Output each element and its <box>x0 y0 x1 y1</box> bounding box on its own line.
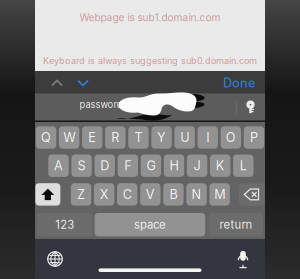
button[interactable]: Y <box>151 126 172 149</box>
staticText: return <box>219 218 252 231</box>
button[interactable]: S <box>71 154 92 177</box>
staticText: D <box>100 158 109 173</box>
staticText: Y <box>157 130 166 145</box>
staticText: U <box>180 130 189 145</box>
staticText: B <box>169 187 177 202</box>
staticText: V <box>146 187 155 202</box>
button[interactable]: Dictation <box>230 246 256 272</box>
button[interactable]: return <box>209 213 263 236</box>
button[interactable]: M <box>209 183 230 206</box>
button[interactable]: C <box>117 183 137 206</box>
staticText: Z <box>77 187 85 202</box>
button[interactable]: X <box>94 183 114 206</box>
button[interactable]: 123 <box>37 213 92 236</box>
staticText: 123 <box>55 218 74 231</box>
staticText: X <box>100 187 109 202</box>
staticText: G <box>146 158 155 173</box>
staticText: J <box>194 158 201 173</box>
button[interactable]: J <box>187 154 207 177</box>
button[interactable]: R <box>105 126 125 149</box>
staticText: I <box>206 130 209 145</box>
button[interactable]: F <box>118 154 138 177</box>
button[interactable]: K <box>210 154 230 177</box>
button[interactable]: space <box>95 213 205 236</box>
button[interactable]: Q <box>36 126 56 149</box>
button[interactable]: Delete <box>239 183 265 206</box>
button[interactable]: W <box>59 126 79 149</box>
staticText: R <box>111 130 119 145</box>
staticText: space <box>134 218 166 231</box>
button[interactable]: N <box>186 183 207 206</box>
button[interactable]: L <box>233 154 253 177</box>
button[interactable]: I <box>197 126 218 149</box>
button[interactable]: O <box>221 126 241 149</box>
button[interactable]: Next keyboard <box>42 246 68 272</box>
button[interactable]: A <box>48 154 69 177</box>
button[interactable]: Done <box>217 71 261 95</box>
staticText: L <box>240 158 247 173</box>
staticText: H <box>169 158 178 173</box>
button[interactable]: D <box>94 154 115 177</box>
staticText: O <box>226 130 236 145</box>
button[interactable]: B <box>163 183 184 206</box>
staticText: password for <box>79 99 138 110</box>
staticText: S <box>78 158 86 173</box>
button[interactable]: T <box>128 126 149 149</box>
staticText: N <box>191 187 201 202</box>
button[interactable]: Shift <box>35 183 60 206</box>
button[interactable]: G <box>141 154 161 177</box>
button[interactable]: V <box>140 183 161 206</box>
button[interactable]: Passwords <box>241 97 261 117</box>
staticText: Keyboard is always suggesting sub0.domai… <box>43 55 257 66</box>
button[interactable]: E <box>82 126 102 149</box>
staticText: P <box>250 130 258 145</box>
staticText: T <box>134 130 142 145</box>
button[interactable]: H <box>164 154 184 177</box>
button[interactable]: Previous field <box>44 71 70 95</box>
staticText: Done <box>223 75 255 91</box>
staticText: M <box>214 187 225 202</box>
button[interactable]: Z <box>71 183 91 206</box>
button[interactable]: U <box>174 126 195 149</box>
button[interactable]: P <box>244 126 264 149</box>
staticText: A <box>54 158 63 173</box>
staticText: Webpage is sub1.domain.com <box>79 11 220 24</box>
staticText: F <box>124 158 131 173</box>
staticText: W <box>63 130 75 145</box>
staticText: C <box>123 187 132 202</box>
staticText: E <box>88 130 96 145</box>
button[interactable]: Next field <box>70 71 96 95</box>
staticText: Q <box>41 130 51 145</box>
staticText: K <box>216 158 225 173</box>
